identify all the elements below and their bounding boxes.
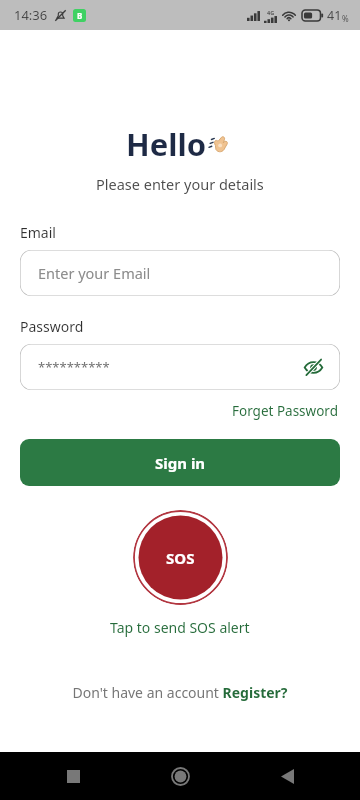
staticText: Forget Password xyxy=(232,402,338,420)
staticText: Sign in xyxy=(155,453,206,473)
staticText: % xyxy=(342,13,349,24)
button[interactable]: Send SOS alert xyxy=(133,510,228,605)
staticText: SOS xyxy=(166,548,195,568)
button[interactable]: Back xyxy=(270,759,304,793)
button[interactable]: Home xyxy=(162,758,198,794)
button[interactable]: Enter your Email xyxy=(20,250,340,296)
button[interactable]: Recent apps xyxy=(56,759,90,793)
staticText: Please enter your details xyxy=(96,174,264,194)
staticText: 41 xyxy=(327,7,342,24)
staticText: Don't have an account Register? xyxy=(72,683,288,702)
staticText: Email xyxy=(20,223,56,242)
button[interactable]: Don't have an account Register? xyxy=(68,679,292,706)
staticText: ********** xyxy=(38,358,110,376)
staticText: 4G xyxy=(267,9,275,16)
button[interactable]: Forget Password xyxy=(230,399,340,423)
staticText: B xyxy=(77,10,83,21)
button[interactable]: Sign in xyxy=(20,439,340,486)
staticText: Tap to send SOS alert xyxy=(110,618,250,637)
staticText: Password xyxy=(20,317,84,336)
staticText: 14:36 xyxy=(14,6,48,24)
staticText: Hello xyxy=(126,123,207,165)
button[interactable]: ********** xyxy=(20,344,340,390)
button[interactable]: Toggle password visibility xyxy=(298,352,328,382)
staticText: Enter your Email xyxy=(38,263,151,283)
